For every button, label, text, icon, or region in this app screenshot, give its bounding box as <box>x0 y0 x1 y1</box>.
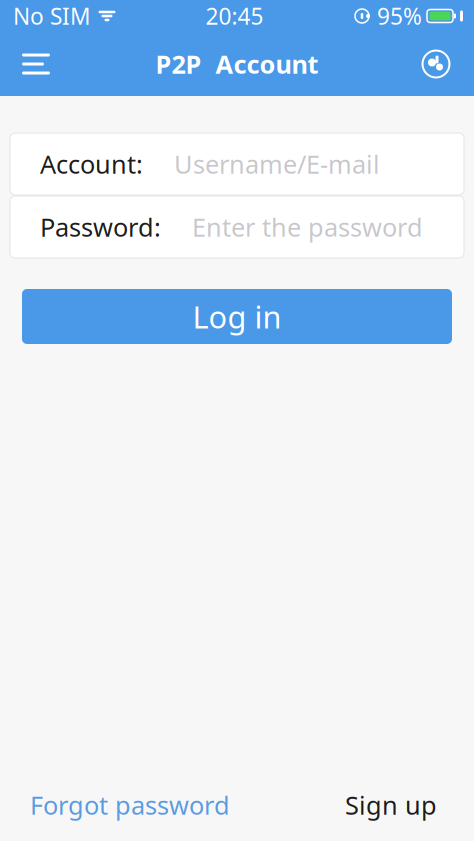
button[interactable]: Forgot password <box>0 778 242 832</box>
staticText: 95% <box>377 1 422 31</box>
staticText: Enter the password <box>192 210 423 244</box>
button[interactable]: Account: <box>10 133 464 195</box>
button[interactable]: Log in <box>22 289 452 344</box>
staticText: No SIM <box>13 1 91 31</box>
staticText: Account: <box>40 147 143 181</box>
staticText: Username/E-mail <box>174 147 380 181</box>
staticText: Log in <box>192 296 281 337</box>
staticText: 20:45 <box>205 1 263 31</box>
staticText: Forgot password <box>30 788 230 822</box>
staticText: Password: <box>40 210 161 244</box>
button[interactable]: Language <box>414 42 474 86</box>
staticText: P2P Account <box>155 47 318 81</box>
staticText: Sign up <box>345 788 437 822</box>
button[interactable]: Menu <box>0 42 66 86</box>
button[interactable]: Sign up <box>333 778 474 832</box>
button[interactable]: Password: <box>10 196 464 258</box>
